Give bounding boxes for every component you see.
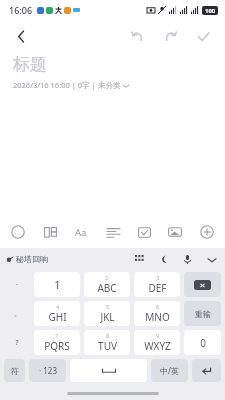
button[interactable]: Redo <box>157 23 183 49</box>
staticText: MNO <box>145 310 170 324</box>
staticText: 5 <box>106 303 110 310</box>
button[interactable]: Done <box>190 23 216 49</box>
staticText: 2 <box>105 274 109 281</box>
button[interactable]: Undo <box>124 23 150 49</box>
button[interactable]: · 123 <box>29 359 66 382</box>
button[interactable]: Checklist <box>131 219 157 245</box>
button[interactable]: 9 <box>134 330 180 355</box>
staticText: 秘塔回响 <box>16 254 48 264</box>
staticText: · 123 <box>39 365 57 376</box>
staticText: 符 <box>11 366 19 376</box>
button[interactable]: Enter <box>192 359 221 382</box>
button[interactable]: 重输 <box>184 301 221 326</box>
button[interactable]: Hide keyboard <box>204 252 219 267</box>
staticText: 2026/3/16 16:00 | 0字 | <box>13 80 98 90</box>
button[interactable]: Table <box>37 219 63 245</box>
button[interactable]: Back <box>9 24 33 48</box>
staticText: 3 <box>156 274 160 281</box>
staticText: JKL <box>100 310 115 324</box>
button[interactable]: 符 <box>4 359 25 382</box>
button[interactable]: 3 <box>134 272 180 297</box>
staticText: 7 <box>55 332 59 339</box>
button[interactable]: 6 <box>134 301 180 326</box>
staticText: PQRS <box>44 339 70 353</box>
staticText: 重输 <box>195 309 211 319</box>
staticText: · <box>16 280 18 290</box>
staticText: 6 <box>156 303 160 310</box>
button[interactable]: Space <box>70 359 147 382</box>
button[interactable]: 1 <box>34 272 80 297</box>
staticText: 100 <box>205 7 216 15</box>
button[interactable]: AI assistant <box>5 219 31 245</box>
button[interactable]: 4 <box>34 301 80 326</box>
button[interactable]: 8 <box>84 330 130 355</box>
button[interactable]: Night mode <box>156 252 171 267</box>
button[interactable]: Add <box>194 219 220 245</box>
staticText: 4 <box>56 303 60 310</box>
button[interactable]: Backspace <box>184 272 221 297</box>
button[interactable]: 7 <box>34 330 80 355</box>
staticText: 16:06 <box>9 4 33 16</box>
staticText: TUV <box>98 339 117 353</box>
staticText: ABC <box>97 281 117 295</box>
button[interactable]: Insert image <box>162 219 188 245</box>
button[interactable]: 中/英 <box>151 359 188 382</box>
staticText: ? <box>15 338 19 348</box>
staticText: WXYZ <box>144 339 171 353</box>
staticText: 中/英 <box>160 365 179 376</box>
button[interactable]: Align <box>100 219 126 245</box>
button[interactable]: 秘塔回响 <box>6 254 48 264</box>
staticText: 标题 <box>13 54 47 75</box>
staticText: 8 <box>106 332 110 339</box>
staticText: 9 <box>156 332 160 339</box>
staticText: DEF <box>148 281 167 295</box>
staticText: 未分类 <box>98 81 121 90</box>
button[interactable]: ? <box>4 330 30 355</box>
button[interactable]: 未分类 <box>98 81 129 90</box>
button[interactable]: Keyboard layout <box>132 252 147 267</box>
staticText: Aa <box>75 226 87 239</box>
button[interactable]: 2 <box>84 272 130 297</box>
staticText: 1 <box>54 277 61 292</box>
button[interactable]: 0 <box>184 330 221 355</box>
button[interactable]: 5 <box>84 301 130 326</box>
staticText: 0 <box>200 336 206 350</box>
button[interactable]: Text format <box>68 219 94 245</box>
button[interactable]: Voice input <box>180 252 195 267</box>
staticText: 。 <box>14 309 21 318</box>
staticText: GHI <box>48 310 67 324</box>
